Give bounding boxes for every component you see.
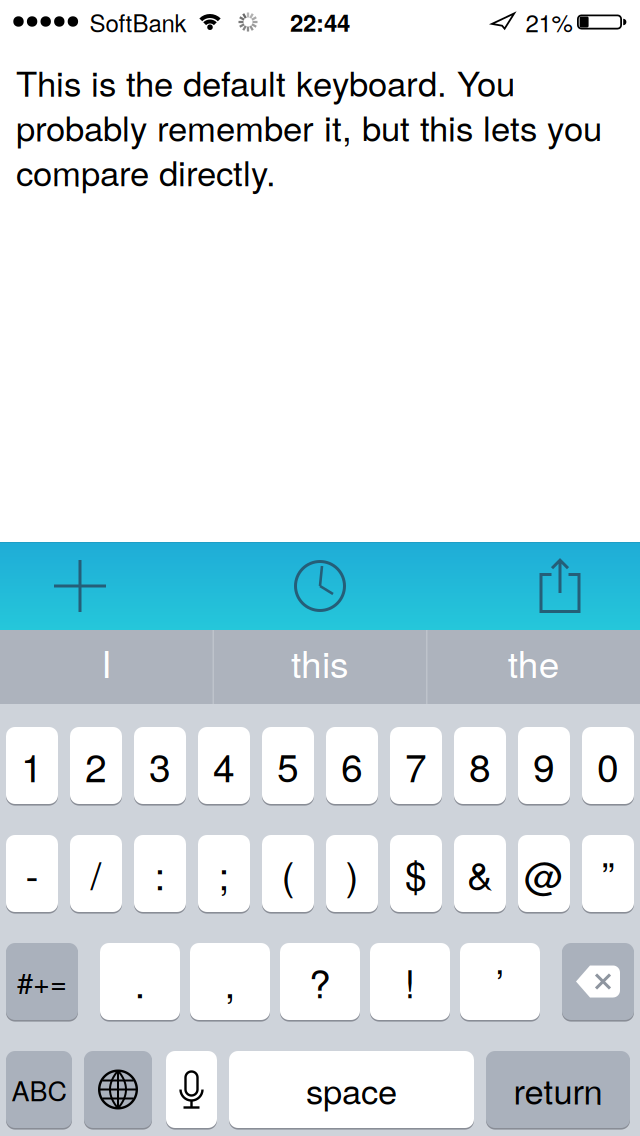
button[interactable]: #+=	[6, 942, 78, 1021]
button[interactable]: 8	[454, 726, 506, 805]
button[interactable]: ;	[198, 834, 250, 913]
staticText: 4	[213, 738, 235, 793]
staticText: 21%	[525, 5, 572, 39]
button[interactable]: )	[326, 834, 378, 913]
button[interactable]: 3	[134, 726, 186, 805]
button[interactable]: Next keyboard	[84, 1050, 152, 1129]
staticText: )	[345, 846, 358, 901]
button[interactable]: 6	[326, 726, 378, 805]
staticText: space	[306, 1065, 397, 1114]
button[interactable]: Delete	[562, 942, 634, 1021]
staticText: $	[405, 846, 427, 901]
button[interactable]: 1	[6, 726, 58, 805]
staticText: 22:44	[290, 5, 350, 39]
button[interactable]: .	[100, 942, 180, 1021]
button[interactable]: (	[262, 834, 314, 913]
button[interactable]: return	[486, 1050, 630, 1129]
staticText: 8	[469, 738, 491, 793]
button[interactable]: Add	[0, 542, 160, 630]
staticText: ABC	[11, 1070, 66, 1109]
staticText: 1	[21, 738, 43, 793]
staticText: 0	[597, 738, 619, 793]
staticText: ,	[224, 954, 235, 1009]
button[interactable]: !	[370, 942, 450, 1021]
button[interactable]: ABC	[6, 1050, 72, 1129]
button[interactable]: this	[214, 630, 426, 704]
staticText: #+=	[17, 961, 67, 1002]
button[interactable]: Share	[480, 542, 640, 630]
button[interactable]: ?	[280, 942, 360, 1021]
button[interactable]: ”	[582, 834, 634, 913]
staticText: @	[524, 846, 564, 901]
button[interactable]: Recents	[160, 542, 480, 630]
staticText: ’	[495, 954, 504, 1009]
button[interactable]: :	[134, 834, 186, 913]
button[interactable]: 0	[582, 726, 634, 805]
button[interactable]: I	[0, 630, 212, 704]
button[interactable]: Dictation	[166, 1050, 217, 1129]
button[interactable]: &	[454, 834, 506, 913]
button[interactable]: 4	[198, 726, 250, 805]
staticText: /	[90, 846, 101, 901]
button[interactable]: @	[518, 834, 570, 913]
button[interactable]: 5	[262, 726, 314, 805]
button[interactable]: -	[6, 834, 58, 913]
button[interactable]: /	[70, 834, 122, 913]
staticText: &	[467, 846, 493, 901]
button[interactable]: space	[229, 1050, 474, 1129]
staticText: 5	[277, 738, 299, 793]
staticText: 7	[405, 738, 427, 793]
staticText: I	[101, 635, 111, 688]
button[interactable]: ’	[460, 942, 540, 1021]
button[interactable]: 9	[518, 726, 570, 805]
staticText: :	[154, 846, 165, 901]
staticText: this	[291, 635, 349, 688]
staticText: (	[281, 846, 294, 901]
staticText: 9	[533, 738, 555, 793]
staticText: 3	[149, 738, 171, 793]
staticText: ”	[601, 846, 614, 901]
staticText: 2	[85, 738, 107, 793]
button[interactable]: the	[427, 630, 640, 704]
button[interactable]: 7	[390, 726, 442, 805]
staticText: return	[513, 1065, 602, 1114]
button[interactable]: $	[390, 834, 442, 913]
staticText: the	[508, 635, 560, 688]
staticText: probably remember it, but this lets you	[16, 102, 602, 151]
staticText: This is the default keyboard. You	[16, 57, 515, 107]
staticText: -	[25, 846, 38, 901]
button[interactable]: 2	[70, 726, 122, 805]
staticText: ;	[218, 846, 229, 901]
staticText: 6	[341, 738, 363, 793]
staticText: ?	[309, 954, 331, 1009]
staticText: !	[404, 954, 415, 1009]
button[interactable]: ,	[190, 942, 270, 1021]
staticText: compare directly.	[16, 146, 276, 196]
staticText: .	[134, 954, 145, 1009]
staticText: SoftBank	[89, 5, 186, 39]
